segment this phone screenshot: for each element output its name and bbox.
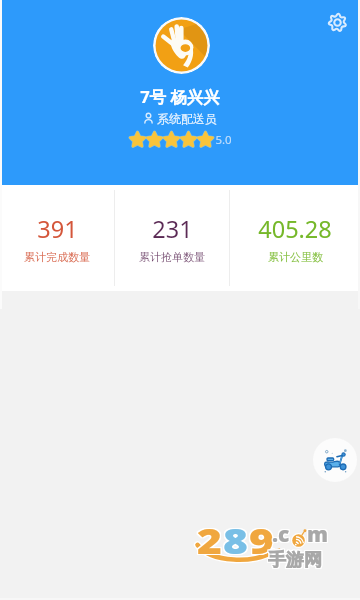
staticText: .c (271, 520, 289, 549)
staticText: 手游网 (269, 549, 323, 568)
staticText: m (308, 521, 329, 550)
staticText: .c (273, 521, 291, 550)
staticText: 8 (223, 517, 249, 565)
staticText: 2 (198, 516, 224, 564)
staticText: .c (273, 520, 291, 549)
staticText: 2 (196, 517, 222, 565)
staticText: 9 (250, 515, 276, 563)
staticText: 391 (37, 213, 78, 245)
staticText: m (308, 520, 329, 549)
staticText: .c (272, 520, 290, 549)
staticText: .c (273, 519, 291, 548)
staticText: 9 (249, 517, 275, 565)
staticText: 8 (222, 517, 248, 565)
staticText: 2 (198, 515, 224, 563)
staticText: 9 (249, 516, 275, 564)
staticText: 8 (224, 517, 250, 565)
staticText: m (306, 520, 327, 549)
staticText: 累计公里数 (268, 250, 323, 264)
staticText: 手游网 (268, 548, 322, 567)
staticText: 累计抢单数量 (139, 250, 205, 264)
staticText: 手游网 (268, 549, 322, 568)
staticText: 9 (248, 516, 274, 564)
button[interactable]: 231 (115, 185, 229, 291)
staticText: 5.0 (215, 132, 232, 148)
staticText: m (307, 520, 328, 549)
button[interactable]: Avatar (153, 17, 210, 74)
staticText: 8 (222, 515, 248, 563)
button[interactable]: 391 (0, 185, 114, 291)
staticText: 系统配送员 (157, 111, 217, 126)
staticText: 9 (248, 515, 274, 563)
staticText: 2 (196, 515, 222, 563)
staticText: 405.28 (258, 213, 332, 245)
staticText: 累计完成数量 (24, 250, 90, 264)
staticText: m (307, 521, 328, 550)
button[interactable]: Start delivery (313, 438, 357, 482)
staticText: 9 (250, 517, 276, 565)
staticText: 2 (197, 515, 223, 563)
staticText: 手游网 (269, 550, 323, 569)
staticText: .c (272, 521, 290, 550)
staticText: 2 (196, 516, 222, 564)
staticText: 手游网 (268, 550, 322, 569)
staticText: 手游网 (269, 548, 323, 567)
staticText: .c (271, 519, 289, 548)
staticText: 手游网 (267, 548, 321, 567)
staticText: 9 (248, 517, 274, 565)
staticText: 8 (224, 515, 250, 563)
staticText: m (306, 519, 327, 548)
staticText: m (306, 521, 327, 550)
staticText: 2 (198, 517, 224, 565)
staticText: 2 (197, 517, 223, 565)
staticText: 8 (224, 516, 250, 564)
staticText: m (307, 519, 328, 548)
staticText: 手游网 (267, 550, 321, 569)
staticText: .c (272, 519, 290, 548)
staticText: 9 (250, 516, 276, 564)
staticText: 8 (222, 516, 248, 564)
staticText: 9 (249, 515, 275, 563)
staticText: 2 (197, 516, 223, 564)
staticText: 7号 杨兴兴 (140, 85, 220, 108)
button[interactable]: 405.28 (230, 185, 360, 291)
staticText: 231 (152, 213, 193, 245)
staticText: 8 (223, 516, 249, 564)
staticText: .c (271, 521, 289, 550)
staticText: m (308, 519, 329, 548)
button[interactable]: Settings (324, 9, 350, 35)
staticText: 手游网 (267, 549, 321, 568)
staticText: 8 (223, 515, 249, 563)
